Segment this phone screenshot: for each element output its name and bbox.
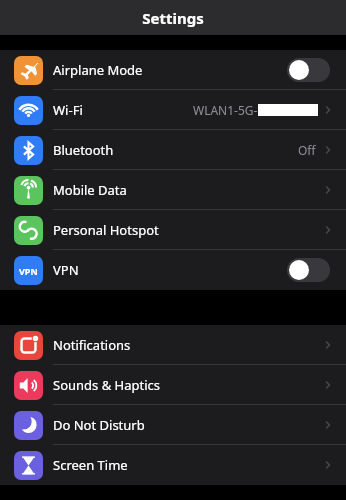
button[interactable]: Airplane Mode	[0, 50, 346, 90]
staticText: Off	[298, 142, 316, 158]
staticText: Bluetooth	[53, 141, 114, 159]
staticText: Sounds & Haptics	[53, 376, 161, 394]
button[interactable]: Mobile Data	[0, 170, 346, 210]
button[interactable]: Do Not Disturb	[0, 405, 346, 445]
button[interactable]: Wi-Fi	[0, 90, 346, 130]
staticText: Airplane Mode	[53, 61, 143, 79]
button[interactable]: Notifications	[0, 325, 346, 365]
button[interactable]: Bluetooth	[0, 130, 346, 170]
staticText: VPN	[53, 261, 79, 279]
staticText: WLAN1-5G-	[193, 102, 258, 118]
staticText: Mobile Data	[53, 181, 127, 199]
staticText: Screen Time	[53, 456, 128, 474]
staticText: Personal Hotspot	[53, 221, 159, 239]
staticText: VPN	[19, 265, 38, 277]
button[interactable]: VPN	[0, 250, 346, 290]
staticText: Settings	[142, 8, 204, 28]
button[interactable]: Personal Hotspot	[0, 210, 346, 250]
staticText: Wi-Fi	[53, 101, 83, 119]
staticText: Do Not Disturb	[53, 416, 145, 434]
button[interactable]: Sounds & Haptics	[0, 365, 346, 405]
staticText: Notifications	[53, 336, 131, 354]
button[interactable]: Screen Time	[0, 445, 346, 485]
